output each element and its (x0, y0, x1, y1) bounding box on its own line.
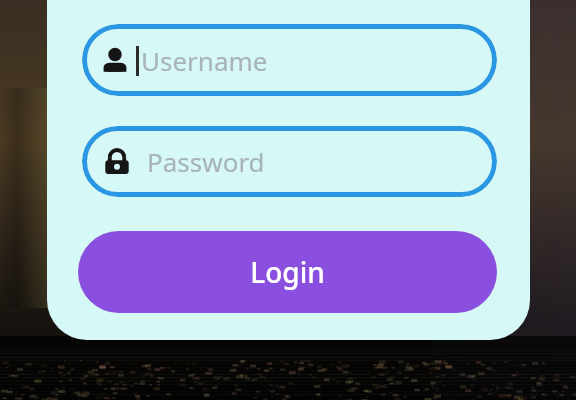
other: Password (102, 147, 132, 177)
button[interactable]: Username (82, 24, 497, 96)
button[interactable]: Login (78, 231, 497, 313)
staticText: Password (147, 144, 265, 179)
other: Username (100, 46, 130, 76)
button[interactable]: Password (82, 126, 497, 197)
staticText: Username (141, 43, 268, 78)
staticText: Login (250, 253, 325, 291)
